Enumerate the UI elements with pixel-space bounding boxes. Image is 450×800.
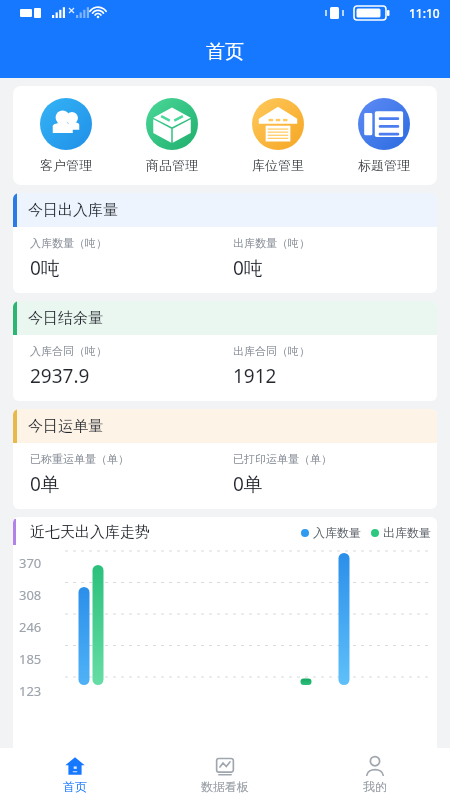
button[interactable]: 数据看板 bbox=[150, 748, 300, 800]
staticText: 近七天出入库走势 bbox=[30, 523, 150, 542]
staticText: 0单 bbox=[30, 471, 60, 497]
button[interactable]: 客户管理 bbox=[13, 96, 119, 175]
staticText: 2937.9 bbox=[30, 363, 90, 389]
staticText: 今日结余量 bbox=[28, 309, 103, 328]
staticText: 0吨 bbox=[233, 255, 263, 281]
staticText: 11:10 bbox=[409, 5, 440, 21]
staticText: 0吨 bbox=[30, 255, 60, 281]
staticText: 入库数量 bbox=[313, 525, 361, 540]
button[interactable]: 商品管理 bbox=[119, 96, 225, 175]
staticText: 我的 bbox=[363, 779, 387, 794]
staticText: 已打印运单量（单） bbox=[233, 452, 332, 466]
staticText: 客户管理 bbox=[40, 157, 92, 173]
staticText: 出库合同（吨） bbox=[233, 344, 310, 358]
staticText: 123 bbox=[19, 682, 55, 700]
staticText: 出库数量（吨） bbox=[233, 236, 310, 250]
staticText: 308 bbox=[19, 586, 55, 604]
button[interactable]: 我的 bbox=[300, 748, 450, 800]
button[interactable]: 今日结余量 bbox=[13, 301, 437, 401]
staticText: 1912 bbox=[233, 363, 277, 389]
staticText: 今日出入库量 bbox=[28, 201, 118, 220]
button[interactable]: 库位管里 bbox=[225, 96, 331, 175]
staticText: 0单 bbox=[233, 471, 263, 497]
button[interactable]: 首页 bbox=[0, 748, 150, 800]
button[interactable]: 今日出入库量 bbox=[13, 193, 437, 293]
staticText: 库位管里 bbox=[252, 157, 304, 173]
staticText: 出库数量 bbox=[383, 525, 431, 540]
staticText: 商品管理 bbox=[146, 157, 198, 173]
staticText: 数据看板 bbox=[201, 779, 249, 794]
staticText: 首页 bbox=[63, 779, 87, 794]
staticText: 入库数量（吨） bbox=[30, 236, 107, 250]
staticText: 已称重运单量（单） bbox=[30, 452, 129, 466]
staticText: 185 bbox=[19, 650, 55, 668]
button[interactable]: 标题管理 bbox=[331, 96, 437, 175]
staticText: 入库合同（吨） bbox=[30, 344, 107, 358]
staticText: 370 bbox=[19, 554, 55, 572]
button[interactable]: 今日运单量 bbox=[13, 409, 437, 509]
staticText: 今日运单量 bbox=[28, 417, 103, 436]
staticText: 首页 bbox=[206, 40, 244, 64]
staticText: 标题管理 bbox=[358, 157, 410, 173]
staticText: 246 bbox=[19, 618, 55, 636]
